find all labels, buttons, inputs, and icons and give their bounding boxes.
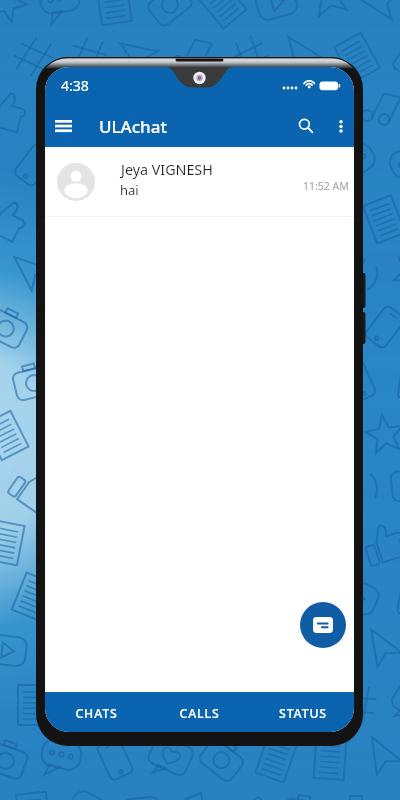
staticText: Jeya VIGNESH	[121, 160, 213, 179]
staticText: ULAchat	[99, 115, 167, 138]
staticText: 11:52 AM	[303, 179, 349, 193]
button[interactable]: New chat	[300, 602, 346, 648]
staticText: CALLS	[179, 705, 220, 722]
button[interactable]: CHATS	[45, 692, 148, 732]
button[interactable]: CALLS	[148, 692, 251, 732]
staticText: 4:38	[61, 76, 89, 95]
button[interactable]: Search	[289, 106, 323, 147]
button[interactable]: More options	[327, 106, 354, 147]
button[interactable]: Jeya VIGNESH	[45, 147, 354, 217]
button[interactable]: Menu	[46, 106, 81, 147]
staticText: CHATS	[75, 705, 118, 722]
staticText: hai	[120, 181, 139, 199]
staticText: STATUS	[279, 705, 327, 722]
button[interactable]: STATUS	[251, 692, 354, 732]
